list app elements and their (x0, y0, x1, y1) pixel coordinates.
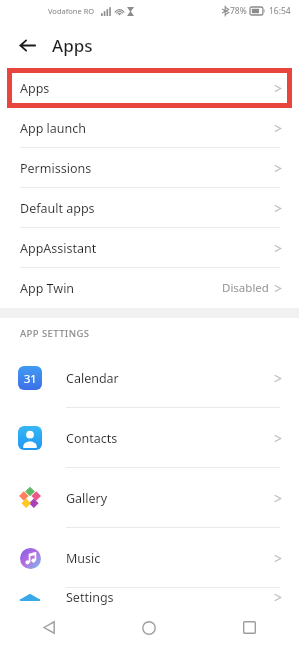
staticText: 78% (230, 5, 247, 17)
button[interactable]: Recent apps (199, 607, 299, 648)
button[interactable]: Apps (0, 68, 299, 108)
staticText: AppAssistant (20, 240, 97, 257)
staticText: APP SETTINGS (20, 327, 90, 340)
button[interactable]: 31 (0, 348, 299, 408)
staticText: Vodafone RO (48, 6, 95, 16)
staticText: Calendar (66, 370, 119, 387)
button[interactable]: Settings (0, 588, 299, 607)
button[interactable]: Default apps (0, 188, 299, 228)
staticText: Apps (20, 80, 50, 97)
button[interactable]: App launch (0, 108, 299, 148)
staticText: Contacts (66, 430, 118, 447)
button[interactable]: Contacts (0, 408, 299, 468)
staticText: Apps (52, 34, 93, 57)
button[interactable]: Music (0, 528, 299, 588)
staticText: App Twin (20, 280, 75, 297)
staticText: Gallery (66, 490, 108, 507)
button[interactable]: Back (10, 28, 44, 62)
button[interactable]: Gallery (0, 468, 299, 528)
staticText: Settings (66, 589, 114, 606)
staticText: Permissions (20, 160, 92, 177)
button[interactable]: Back (0, 607, 99, 648)
staticText: Default apps (20, 200, 95, 217)
staticText: App launch (20, 120, 87, 137)
button[interactable]: Home (99, 607, 199, 648)
button[interactable]: App Twin (0, 268, 299, 308)
staticText: 31 (24, 371, 37, 386)
staticText: 16:54 (269, 5, 291, 17)
staticText: Disabled (222, 280, 269, 296)
button[interactable]: Permissions (0, 148, 299, 188)
staticText: Music (66, 550, 101, 567)
button[interactable]: AppAssistant (0, 228, 299, 268)
